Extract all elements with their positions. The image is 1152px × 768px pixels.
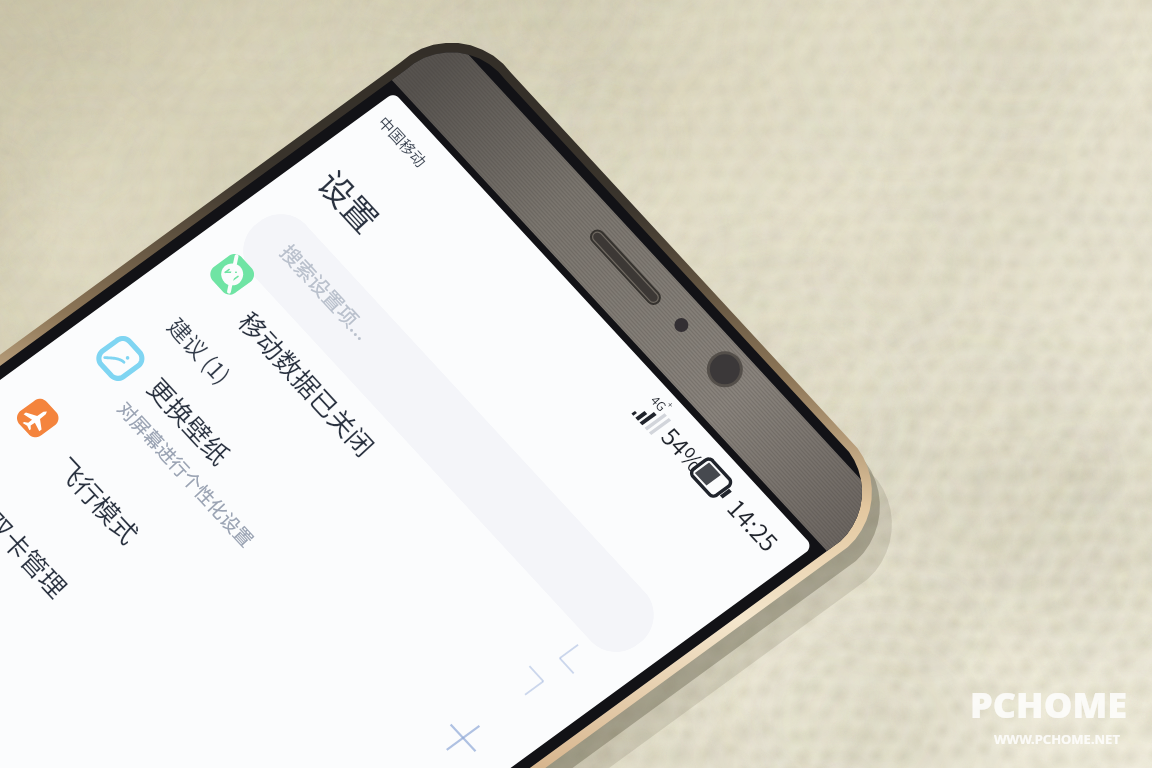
button[interactable]: Settings screen on a phone lying on leat… (0, 0, 1152, 768)
